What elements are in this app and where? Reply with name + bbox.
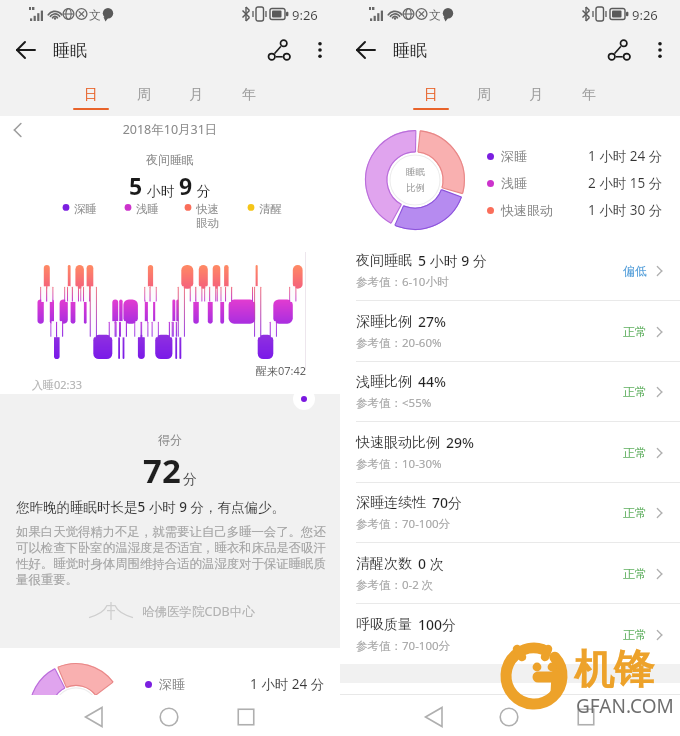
staticText: 参考值：20-60% [356, 335, 442, 351]
staticText: 快速眼动 [501, 202, 553, 218]
button[interactable]: Recents [572, 703, 600, 731]
staticText: 深睡连续性 [356, 494, 426, 512]
staticText: 入睡02:33 [32, 377, 83, 392]
staticText: 年 [582, 86, 596, 104]
button[interactable]: Previous day [6, 118, 30, 142]
staticText: 1 小时 24 分 [250, 675, 325, 693]
button[interactable]: Home [495, 703, 523, 731]
staticText: 5 [129, 170, 143, 201]
button[interactable]: Share [606, 37, 632, 63]
button[interactable]: 日 [405, 76, 457, 116]
staticText: 72 [143, 448, 181, 493]
staticText: 深睡 [74, 202, 97, 216]
staticText: 正常 [623, 384, 647, 399]
staticText: 您昨晚的睡眠时长是5 小时 9 分，有点偏少。 [16, 498, 326, 516]
staticText: 夜间睡眠 [356, 252, 412, 270]
staticText: 5 小时 9 分 [418, 251, 487, 270]
staticText: 44% [418, 372, 446, 391]
staticText: 机锋 [574, 644, 654, 694]
staticText: 9:26 [292, 6, 318, 24]
button[interactable]: 深睡比例 [340, 301, 680, 362]
button[interactable]: Back [420, 703, 448, 731]
button[interactable]: 快速眼动比例 [340, 422, 680, 483]
staticText: 1 小时 24 分 [588, 147, 663, 165]
staticText: GFAN.COM [576, 693, 674, 719]
staticText: 参考值：10-30% [356, 456, 442, 472]
staticText: 分 [193, 181, 211, 200]
button[interactable]: Back [16, 40, 36, 60]
staticText: 睡眠 [53, 40, 87, 61]
staticText: 浅睡 [136, 202, 159, 216]
button[interactable]: 日 [65, 76, 117, 116]
button[interactable]: 深睡连续性 [340, 482, 680, 543]
staticText: 快速 眼动 [196, 202, 219, 231]
staticText: 正常 [623, 324, 647, 339]
button[interactable]: 周 [458, 76, 510, 116]
staticText: 日 [424, 86, 438, 104]
button[interactable]: 清醒次数 [340, 543, 680, 604]
staticText: 夜间睡眠 [0, 152, 340, 167]
button[interactable]: 呼吸质量 [340, 604, 680, 665]
staticText: 29% [446, 433, 474, 452]
staticText: 正常 [623, 566, 647, 581]
staticText: 月 [189, 86, 203, 104]
staticText: 清醒 [259, 202, 282, 216]
staticText: 周 [137, 86, 151, 104]
button[interactable]: 年 [563, 76, 615, 116]
staticText: 正常 [623, 627, 647, 642]
button[interactable]: 月 [170, 76, 222, 116]
staticText: 比例 [406, 182, 425, 194]
button[interactable]: 周 [118, 76, 170, 116]
staticText: 参考值：70-100分 [356, 638, 451, 654]
staticText: 浅睡 [501, 175, 527, 191]
staticText: 100分 [418, 615, 457, 634]
staticText: 深睡 [501, 148, 527, 164]
staticText: 参考值：6-10小时 [356, 274, 449, 290]
button[interactable]: 年 [223, 76, 275, 116]
staticText: 参考值：70-100分 [356, 516, 451, 532]
button[interactable]: Back [356, 40, 376, 60]
staticText: 深睡比例 [356, 313, 412, 331]
button[interactable]: 月 [510, 76, 562, 116]
staticText: 浅睡比例 [356, 373, 412, 391]
staticText: 哈佛医学院CDB中心 [142, 603, 255, 620]
staticText: 2018年10月31日 [0, 121, 340, 138]
staticText: 2 小时 15 分 [588, 174, 663, 192]
staticText: 周 [477, 86, 491, 104]
staticText: 日 [84, 86, 98, 104]
staticText: 月 [529, 86, 543, 104]
staticText: 9:26 [632, 6, 658, 24]
staticText: 正常 [623, 505, 647, 520]
staticText: 睡眠 [393, 40, 427, 61]
button[interactable]: Recents [232, 703, 260, 731]
staticText: 正常 [623, 445, 647, 460]
staticText: 文 [89, 7, 101, 22]
staticText: 文 [429, 7, 441, 22]
staticText: 呼吸质量 [356, 616, 412, 634]
staticText: 小时 [143, 181, 179, 200]
staticText: 醒来07:42 [256, 363, 307, 378]
button[interactable]: More options [648, 38, 672, 62]
staticText: 1 小时 30 分 [588, 201, 663, 219]
button[interactable]: Share [266, 37, 292, 63]
staticText: 如果白天觉得精力不足，就需要让自己多睡一会了。您还可以检查下卧室的温湿度是否适宜… [16, 524, 330, 588]
staticText: 深睡 [159, 676, 185, 692]
staticText: 27% [418, 312, 446, 331]
staticText: 偏低 [623, 263, 647, 278]
button[interactable]: 浅睡比例 [340, 361, 680, 422]
button[interactable]: 夜间睡眠 [340, 240, 680, 301]
staticText: 分 [183, 471, 197, 489]
staticText: 参考值：0-2 次 [356, 577, 434, 593]
staticText: 参考值：<55% [356, 395, 432, 411]
button[interactable]: Home [155, 703, 183, 731]
button[interactable]: Back [80, 703, 108, 731]
staticText: 快速眼动比例 [356, 434, 440, 452]
staticText: 睡眠 [406, 166, 425, 178]
staticText: 9 [179, 170, 193, 201]
staticText: 70分 [432, 493, 463, 512]
staticText: 得分 [0, 432, 340, 447]
button[interactable]: More options [308, 38, 332, 62]
staticText: 年 [242, 86, 256, 104]
staticText: 0 次 [418, 554, 444, 573]
staticText: 清醒次数 [356, 555, 412, 573]
